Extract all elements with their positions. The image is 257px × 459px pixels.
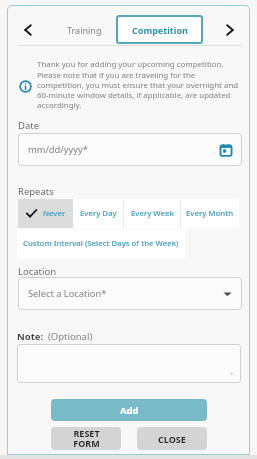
staticText: mm/dd/yyyy* bbox=[28, 143, 220, 156]
button[interactable]: Add bbox=[51, 399, 207, 421]
staticText: Competition bbox=[132, 24, 188, 36]
staticText: (Optional) bbox=[48, 330, 93, 343]
staticText: Every Month bbox=[186, 208, 234, 219]
staticText: Every Day bbox=[80, 208, 117, 219]
button[interactable]: Select a Location* bbox=[18, 277, 242, 310]
staticText: Add bbox=[120, 404, 139, 417]
button[interactable]: Every Month bbox=[181, 199, 239, 228]
button[interactable]: Every Week bbox=[124, 199, 181, 228]
staticText: Location bbox=[18, 265, 57, 278]
button[interactable]: Competition bbox=[116, 15, 203, 44]
staticText: Repeats bbox=[18, 185, 54, 198]
staticText: Custom Interval (Select Days of the Week… bbox=[23, 238, 179, 249]
staticText: Training bbox=[67, 24, 102, 36]
button[interactable]: mm/dd/yyyy* bbox=[18, 133, 242, 166]
button[interactable]: RESET FORM bbox=[51, 427, 121, 450]
button[interactable]: Training bbox=[52, 16, 116, 44]
button[interactable] bbox=[17, 344, 241, 383]
button[interactable]: Every Day bbox=[73, 199, 124, 228]
staticText: Every Week bbox=[131, 208, 174, 219]
staticText: Never bbox=[43, 208, 66, 219]
staticText: Thank you for adding your upcoming compe… bbox=[37, 59, 239, 110]
staticText: CLOSE bbox=[158, 433, 186, 445]
button[interactable]: CLOSE bbox=[137, 427, 207, 450]
staticText: Select a Location* bbox=[28, 287, 223, 300]
staticText: Date bbox=[18, 119, 40, 132]
staticText: RESET FORM bbox=[73, 427, 100, 450]
button[interactable]: Previous page bbox=[15, 17, 41, 43]
staticText: Note: bbox=[17, 330, 44, 343]
button[interactable]: Never bbox=[18, 199, 73, 228]
button[interactable]: Custom Interval (Select Days of the Week… bbox=[17, 229, 185, 258]
button[interactable]: Next page bbox=[217, 17, 243, 43]
